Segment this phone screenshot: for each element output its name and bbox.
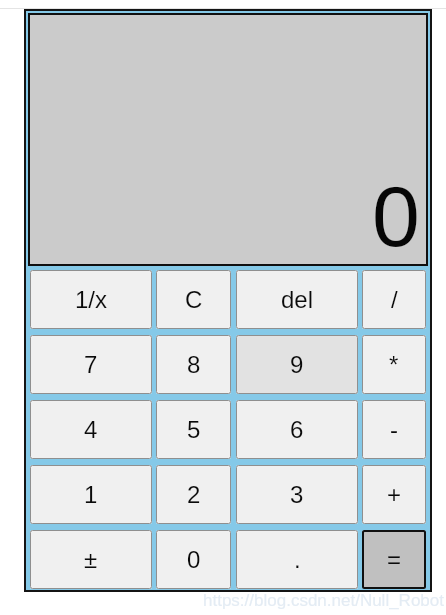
staticText: 8 bbox=[187, 351, 201, 378]
staticText: ± bbox=[84, 546, 98, 573]
staticText: 2 bbox=[187, 481, 201, 508]
staticText: 7 bbox=[84, 351, 98, 378]
staticText: - bbox=[390, 416, 398, 443]
staticText: 9 bbox=[290, 351, 304, 378]
staticText: / bbox=[391, 286, 398, 313]
staticText: 4 bbox=[84, 416, 98, 443]
staticText: + bbox=[387, 481, 402, 508]
staticText: 6 bbox=[290, 416, 304, 443]
staticText: del bbox=[281, 286, 314, 313]
staticText: * bbox=[389, 351, 399, 378]
staticText: 5 bbox=[187, 416, 201, 443]
staticText: 1/x bbox=[75, 286, 108, 313]
staticText: . bbox=[294, 546, 301, 573]
staticText: 0 bbox=[187, 546, 201, 573]
staticText: 0 bbox=[372, 168, 420, 264]
staticText: C bbox=[185, 286, 203, 313]
staticText: 3 bbox=[290, 481, 304, 508]
staticText: = bbox=[387, 546, 402, 573]
staticText: 1 bbox=[84, 481, 98, 508]
staticText: https://blog.csdn.net/Null_Robot bbox=[203, 591, 444, 610]
